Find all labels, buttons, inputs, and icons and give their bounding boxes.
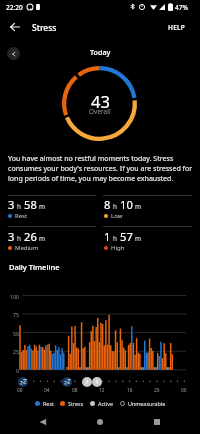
button[interactable]: 8 xyxy=(104,197,192,227)
button[interactable]: Activity xyxy=(92,377,102,387)
staticText: 0 xyxy=(16,367,19,374)
staticText: Stress xyxy=(68,400,84,407)
staticText: 22:20 xyxy=(6,3,23,12)
staticText: m xyxy=(135,202,141,211)
staticText: Daily Timeline xyxy=(9,262,60,272)
button[interactable]: Back xyxy=(33,412,53,432)
staticText: h xyxy=(17,202,21,211)
staticText: Unmeasurable xyxy=(128,400,166,407)
staticText: 100 xyxy=(10,293,19,300)
button[interactable]: Sleep xyxy=(62,377,72,387)
staticText: 43 xyxy=(91,90,110,112)
button[interactable]: Active xyxy=(90,398,114,409)
staticText: Rest xyxy=(15,212,28,220)
staticText: 04 xyxy=(44,387,50,394)
staticText: 58 xyxy=(24,197,37,212)
staticText: 57 xyxy=(120,229,133,244)
button[interactable]: Navigate up xyxy=(4,16,26,38)
staticText: h xyxy=(17,234,21,243)
button[interactable]: HELP xyxy=(168,16,186,38)
button[interactable]: Home xyxy=(90,412,110,432)
staticText: m xyxy=(39,234,45,243)
staticText: 20 xyxy=(154,387,160,394)
staticText: 50 xyxy=(13,330,19,337)
staticText: 25 xyxy=(13,348,19,355)
button[interactable]: Rest xyxy=(35,398,54,409)
staticText: 10 xyxy=(120,197,133,212)
staticText: Active xyxy=(98,400,114,407)
staticText: 08 xyxy=(72,387,78,394)
button[interactable]: 3 xyxy=(8,197,96,227)
staticText: h xyxy=(113,202,117,211)
staticText: Rest xyxy=(43,400,54,407)
staticText: m xyxy=(135,234,141,243)
staticText: 16 xyxy=(127,387,133,394)
button[interactable]: Sleep xyxy=(18,377,28,387)
staticText: Overall xyxy=(89,107,111,116)
button[interactable]: 3 xyxy=(8,229,96,259)
staticText: Medium xyxy=(15,244,39,252)
staticText: High xyxy=(111,244,125,252)
staticText: Today xyxy=(90,47,111,57)
staticText: h xyxy=(113,234,117,243)
button[interactable]: Stress xyxy=(60,398,84,409)
staticText: 00 xyxy=(17,387,23,394)
button[interactable]: Previous xyxy=(7,47,20,60)
staticText: HELP xyxy=(168,23,186,32)
staticText: You have almost no restful moments today… xyxy=(8,153,198,183)
staticText: 75 xyxy=(13,311,19,318)
button[interactable]: Activity xyxy=(82,377,92,387)
staticText: 1 xyxy=(104,229,111,244)
staticText: 3 xyxy=(8,229,15,244)
staticText: m xyxy=(39,202,45,211)
staticText: 00 xyxy=(181,387,187,394)
staticText: Low xyxy=(111,212,123,220)
staticText: Stress xyxy=(32,22,57,34)
staticText: 12 xyxy=(99,387,105,394)
staticText: 8 xyxy=(104,197,111,212)
button[interactable]: Recent apps xyxy=(147,412,167,432)
staticText: 47% xyxy=(175,3,188,12)
staticText: 26 xyxy=(24,229,37,244)
staticText: 3 xyxy=(8,197,15,212)
button[interactable]: 1 xyxy=(104,229,192,259)
button[interactable]: Unmeasurable xyxy=(120,398,166,409)
